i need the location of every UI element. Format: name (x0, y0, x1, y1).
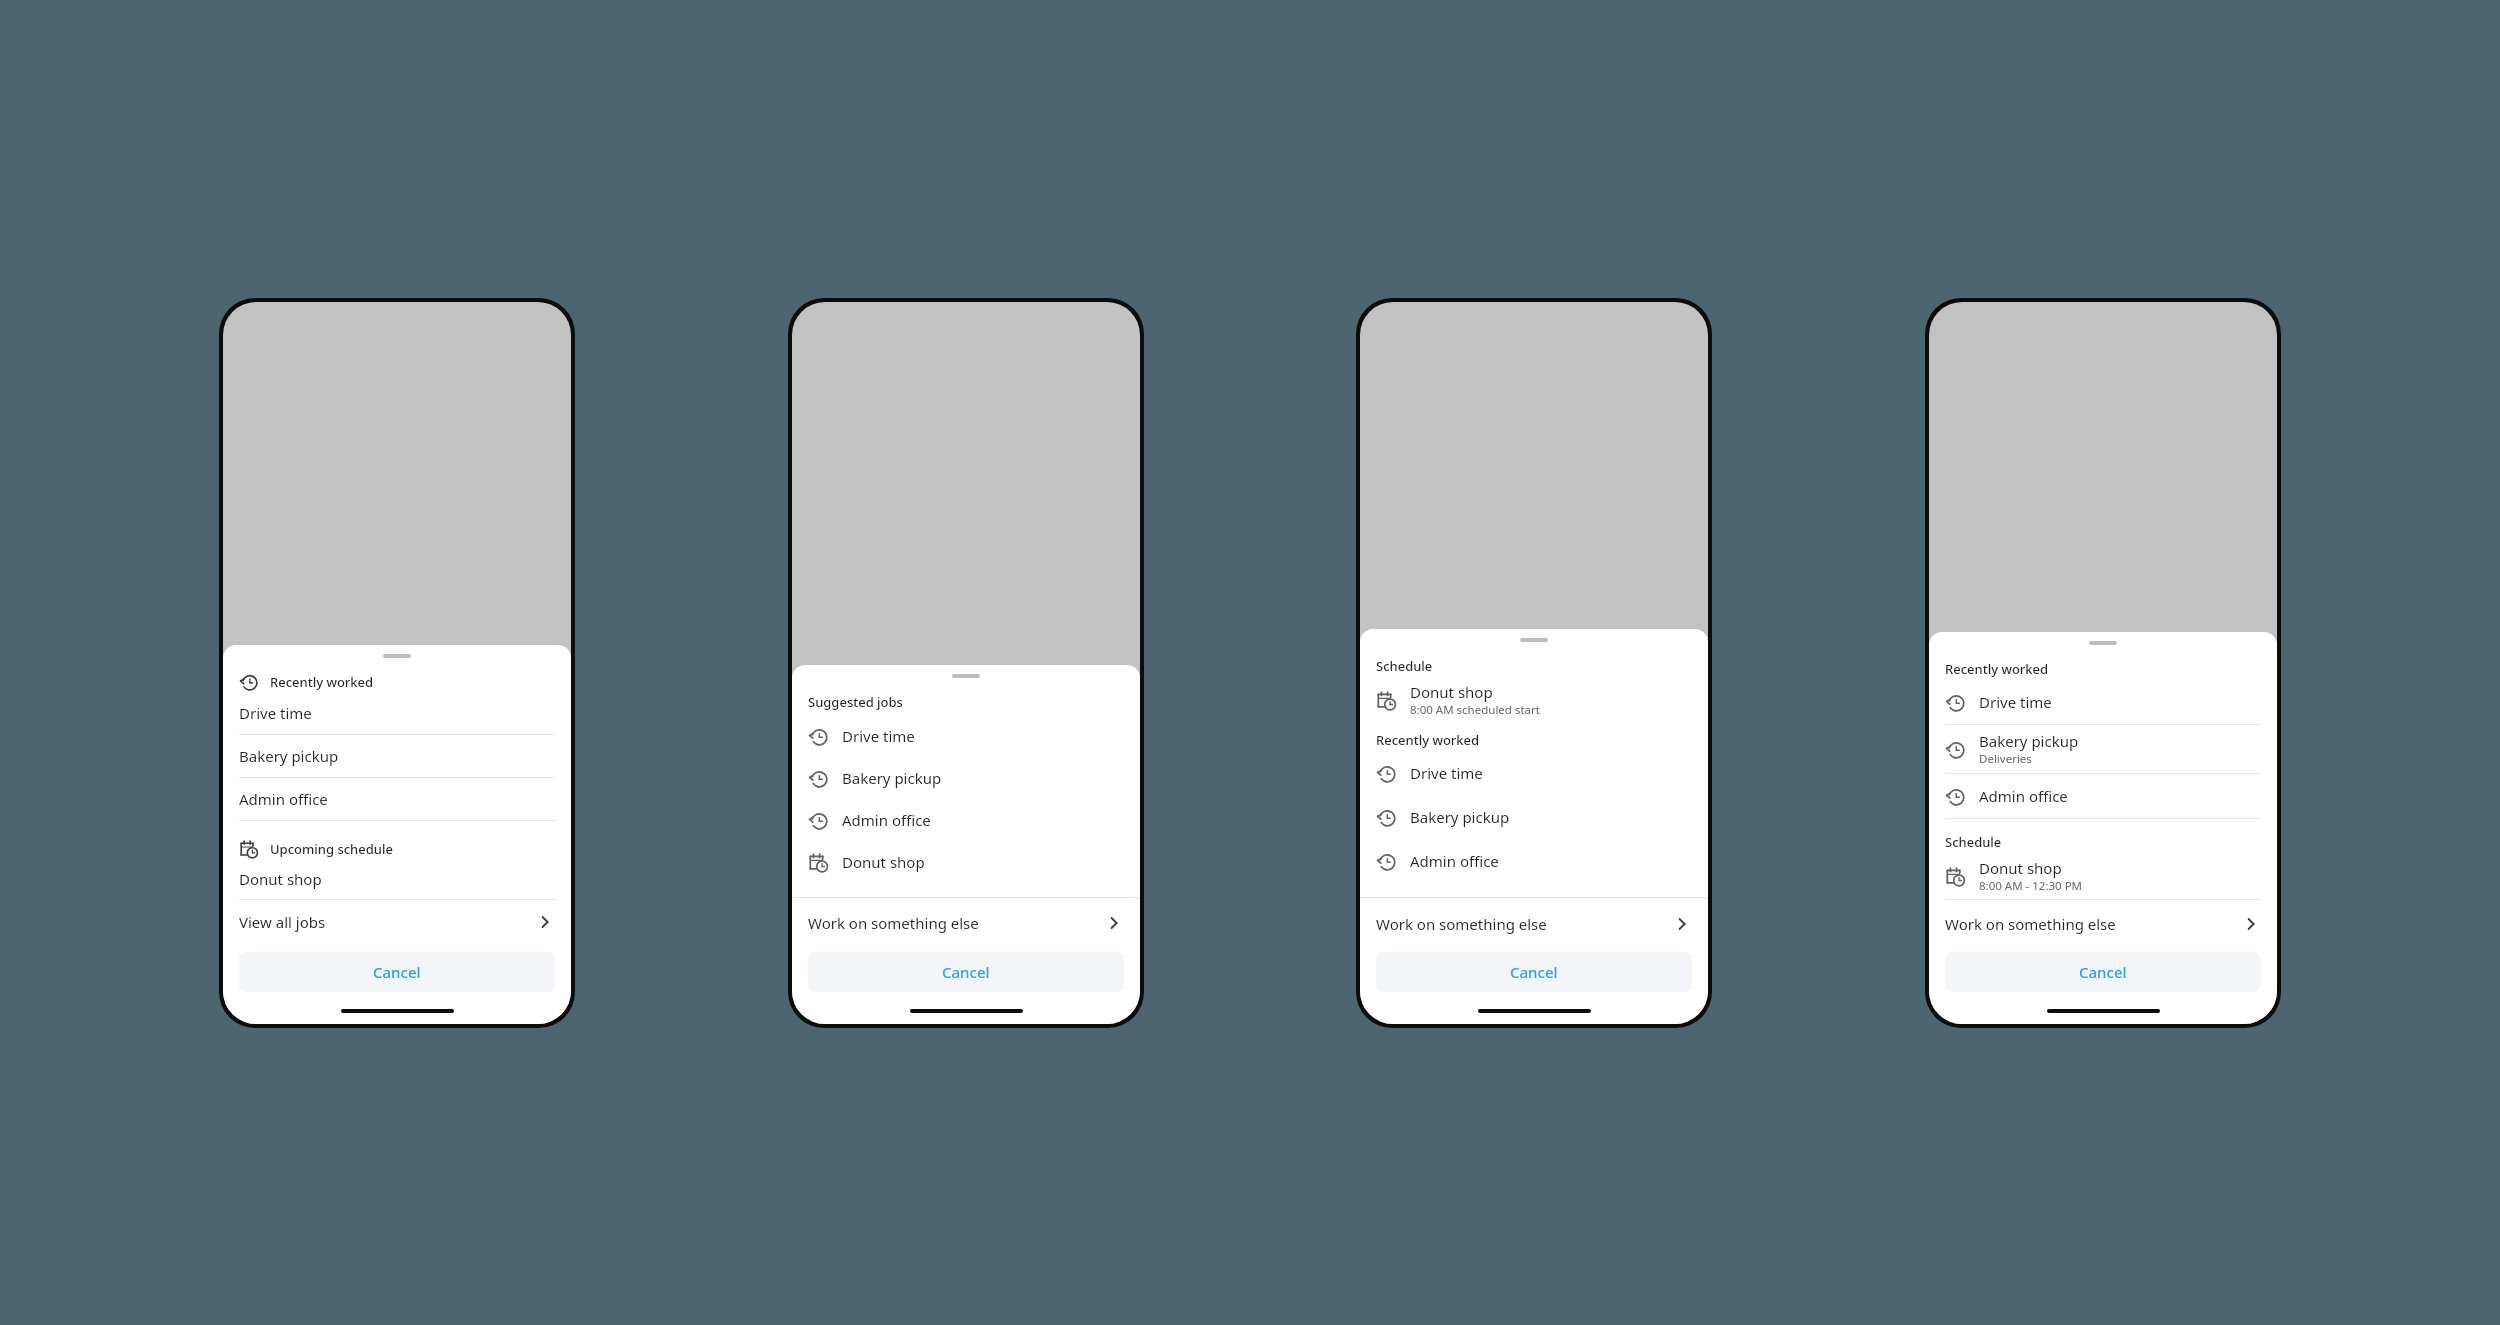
staticText: Bakery pickup (1979, 731, 2079, 751)
staticText: Schedule (1376, 657, 1433, 675)
button[interactable]: Bakery pickup (1929, 725, 2277, 773)
button[interactable]: Drive time (792, 715, 1140, 757)
staticText: 8:00 AM - 12:30 PM (1979, 878, 2083, 894)
staticText: Admin office (842, 810, 931, 830)
other: Work on something else (1672, 914, 1692, 934)
staticText: Bakery pickup (842, 768, 942, 788)
button[interactable]: View all jobs (223, 900, 571, 944)
button[interactable]: Bakery pickup (223, 735, 571, 777)
button[interactable]: Drive time (1360, 751, 1708, 795)
button[interactable]: Bakery pickup (792, 757, 1140, 799)
staticText: Recently worked (270, 673, 374, 691)
staticText: 8:00 AM scheduled start (1410, 702, 1540, 718)
staticText: Donut shop (1410, 682, 1493, 702)
staticText: Drive time (239, 703, 312, 723)
button[interactable]: Donut shop (792, 841, 1140, 883)
button[interactable]: Admin office (792, 799, 1140, 841)
staticText: Admin office (1979, 786, 2068, 806)
staticText: View all jobs (239, 912, 535, 932)
staticText: Suggested jobs (808, 693, 903, 711)
button[interactable]: Cancel (808, 952, 1124, 992)
staticText: Work on something else (1945, 914, 2241, 934)
button[interactable]: Bakery pickup (1360, 795, 1708, 839)
staticText: Drive time (1979, 692, 2052, 712)
button[interactable]: Donut shop (1360, 677, 1708, 723)
button[interactable]: Work on something else (1929, 900, 2277, 948)
staticText: Work on something else (1376, 914, 1672, 934)
other: Work on something else (2241, 914, 2261, 934)
button[interactable]: Cancel (1376, 952, 1692, 992)
staticText: Deliveries (1979, 751, 2032, 767)
staticText: Drive time (842, 726, 915, 746)
staticText: Drive time (1410, 763, 1483, 783)
button[interactable]: Admin office (1929, 774, 2277, 818)
staticText: Schedule (1945, 833, 2002, 851)
button[interactable]: Admin office (223, 778, 571, 820)
staticText: Bakery pickup (1410, 807, 1510, 827)
staticText: Cancel (1510, 962, 1558, 982)
staticText: Donut shop (1979, 858, 2062, 878)
staticText: Admin office (1410, 851, 1499, 871)
staticText: Recently worked (1376, 731, 1480, 749)
staticText: Admin office (239, 789, 328, 809)
staticText: Bakery pickup (239, 746, 339, 766)
staticText: Donut shop (842, 852, 925, 872)
staticText: Cancel (373, 962, 421, 982)
staticText: Cancel (942, 962, 990, 982)
staticText: Cancel (2079, 962, 2127, 982)
button[interactable]: Cancel (239, 952, 555, 992)
button[interactable]: Drive time (1929, 680, 2277, 724)
button[interactable]: Donut shop (223, 859, 571, 899)
button[interactable]: Donut shop (1929, 853, 2277, 899)
button[interactable]: Work on something else (1360, 898, 1708, 950)
button[interactable]: Admin office (1360, 839, 1708, 883)
staticText: Donut shop (239, 869, 322, 889)
button[interactable]: Work on something else (792, 898, 1140, 948)
other: View all jobs (535, 912, 555, 932)
staticText: Recently worked (1945, 660, 2049, 678)
staticText: Upcoming schedule (270, 840, 393, 858)
other: Work on something else (1104, 913, 1124, 933)
button[interactable]: Drive time (223, 692, 571, 734)
button[interactable]: Cancel (1945, 952, 2261, 992)
staticText: Work on something else (808, 913, 1104, 933)
